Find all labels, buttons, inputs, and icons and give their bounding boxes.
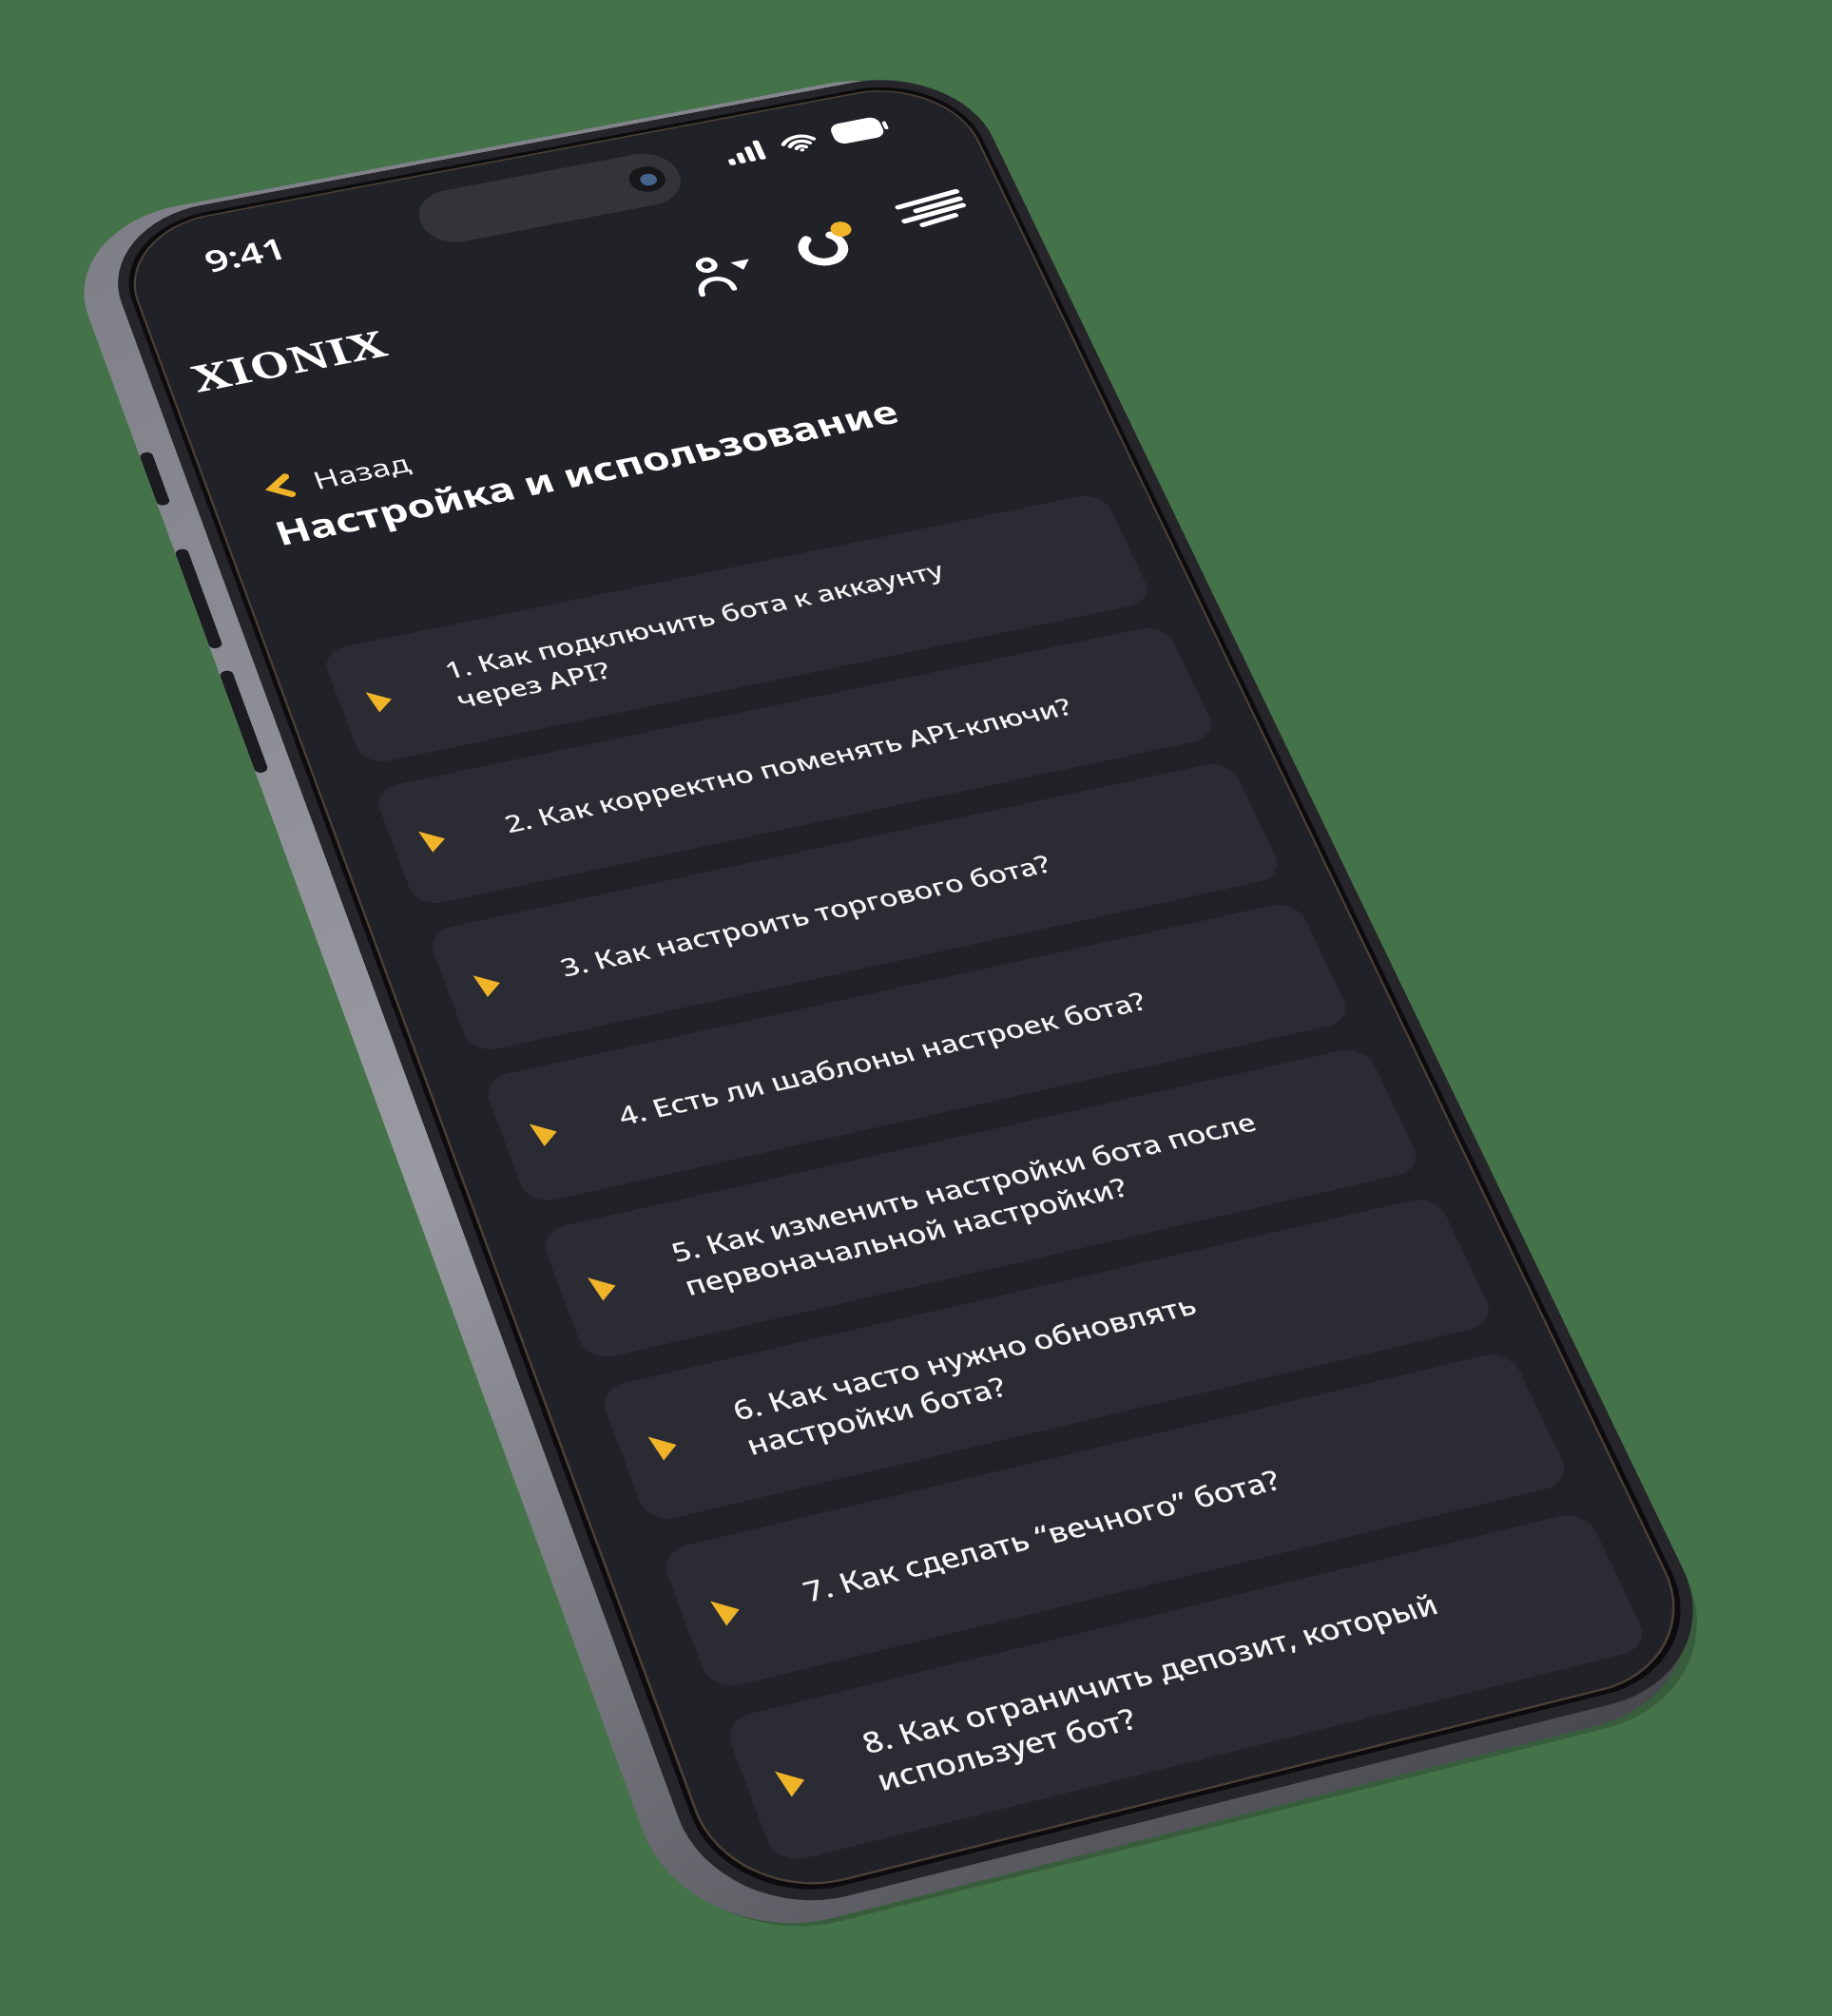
staticText: 1. Как подключить бота к аккаунту через … <box>440 537 1047 715</box>
staticText: 6. Как часто нужно обновлять настройки б… <box>727 1249 1381 1463</box>
button[interactable]: 2. Как корректно поменять API-ключи? <box>372 624 1219 908</box>
staticText: Настройка и использование <box>268 390 906 555</box>
button[interactable]: 4. Есть ли шаблоны настроек бота? <box>481 900 1353 1206</box>
button[interactable]: Notifications <box>787 215 879 278</box>
staticText: 4. Есть ли шаблоны настроек бота? <box>613 966 1234 1133</box>
staticText: 2. Как корректно поменять API-ключи? <box>500 685 1103 840</box>
button[interactable]: 6. Как часто нужно обновлять настройки б… <box>597 1195 1497 1524</box>
staticText: 9:41 <box>198 228 293 282</box>
button[interactable]: Menu <box>885 178 976 240</box>
button[interactable]: Account <box>680 242 771 306</box>
button[interactable]: 8. Как ограничить депозит, который испол… <box>722 1509 1651 1865</box>
button[interactable]: 5. Как изменить настройки бота после пер… <box>538 1045 1424 1362</box>
staticText: 5. Как изменить настройки бота после пер… <box>666 1097 1310 1303</box>
button[interactable]: 1. Как подключить бота к аккаунту через … <box>320 492 1154 766</box>
staticText: 3. Как настроить торгового бота? <box>555 823 1167 984</box>
button[interactable]: Назад <box>258 446 416 506</box>
button[interactable]: 7. Как сделать “вечного” бота? <box>659 1349 1573 1692</box>
button[interactable]: 3. Как настроить торгового бота? <box>426 760 1285 1054</box>
staticText: Назад <box>308 446 416 496</box>
staticText: XIONIX <box>184 317 394 401</box>
staticText: 8. Как ограничить депозит, который испол… <box>856 1568 1531 1799</box>
staticText: 7. Как сделать “вечного” бота? <box>798 1423 1447 1610</box>
